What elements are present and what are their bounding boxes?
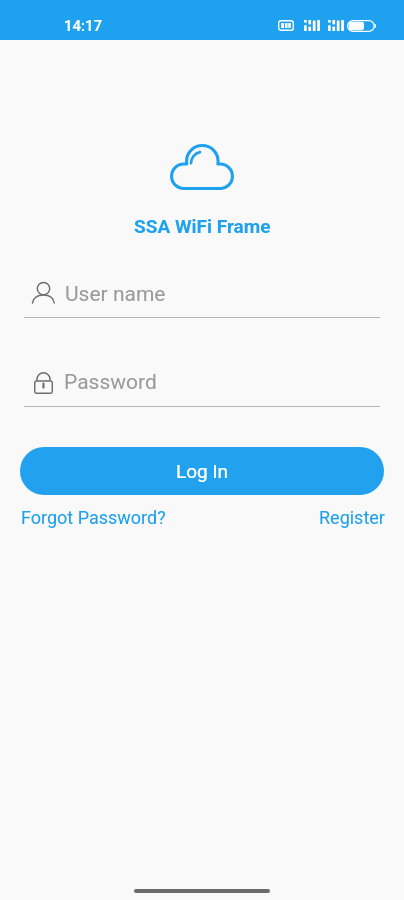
- staticText: Password: [64, 370, 157, 395]
- staticText: 14:17: [64, 17, 103, 35]
- button[interactable]: Register: [319, 507, 385, 528]
- staticText: Register: [319, 507, 385, 528]
- staticText: Log In: [176, 460, 229, 482]
- button[interactable]: Forgot Password?: [21, 507, 166, 528]
- button[interactable]: Log In: [20, 447, 384, 495]
- staticText: Forgot Password?: [21, 507, 166, 528]
- staticText: SSA WiFi Frame: [134, 215, 271, 237]
- staticText: User name: [65, 282, 166, 307]
